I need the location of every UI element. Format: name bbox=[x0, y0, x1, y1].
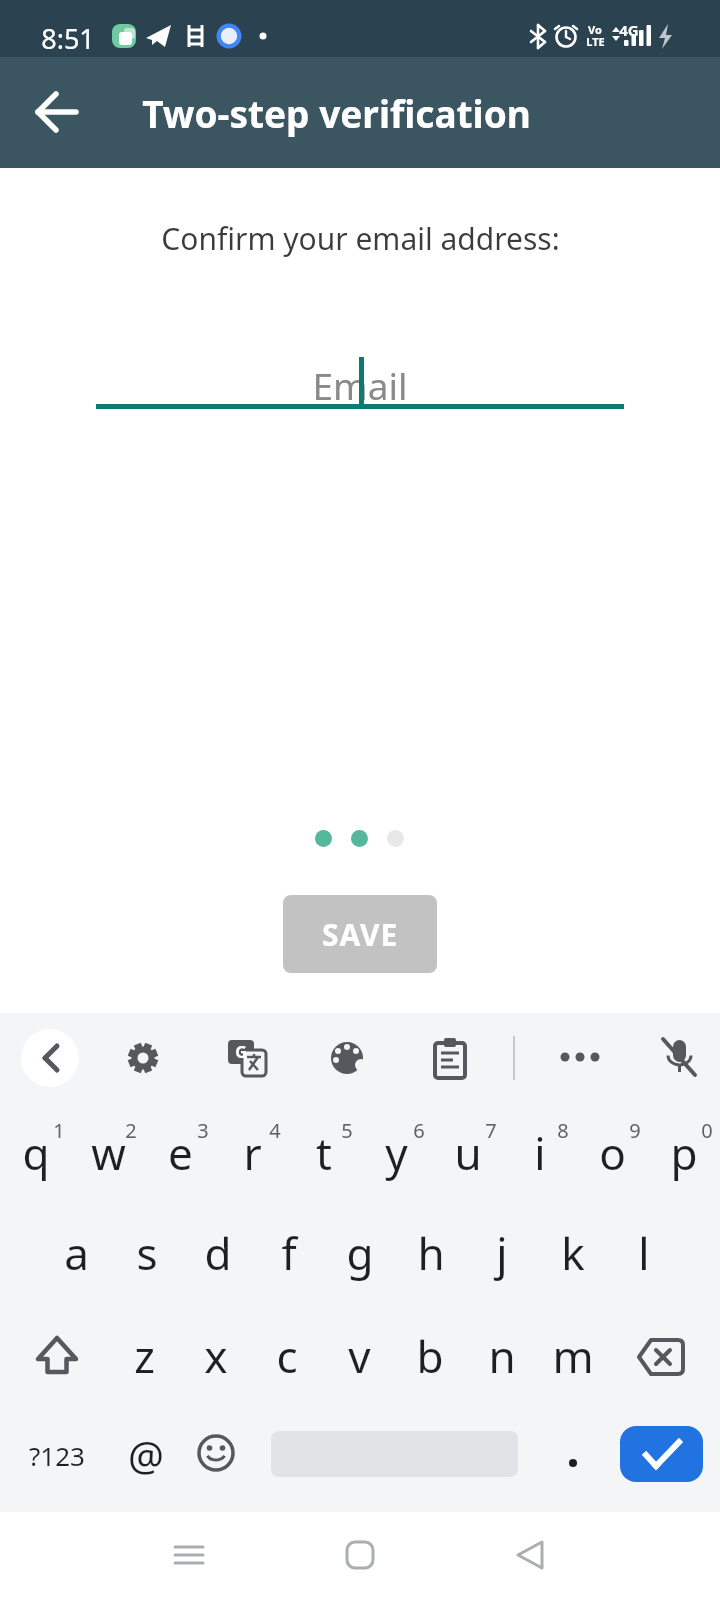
staticText: g bbox=[346, 1223, 374, 1283]
button[interactable]: ?123 bbox=[20, 1432, 94, 1478]
staticText: h bbox=[417, 1223, 445, 1283]
button[interactable] bbox=[22, 80, 88, 144]
staticText: Vo bbox=[588, 22, 602, 35]
staticText: d bbox=[204, 1223, 232, 1283]
button[interactable] bbox=[186, 1428, 246, 1482]
staticText: Confirm your email address: bbox=[161, 218, 560, 259]
staticText: c bbox=[276, 1326, 298, 1386]
button[interactable]: r bbox=[216, 1107, 288, 1199]
staticText: 7 bbox=[485, 1117, 497, 1141]
button[interactable]: j bbox=[467, 1207, 537, 1299]
button[interactable]: c bbox=[252, 1310, 322, 1402]
staticText: 5 bbox=[341, 1117, 353, 1141]
staticText: y bbox=[385, 1123, 408, 1183]
button[interactable] bbox=[324, 1034, 372, 1082]
staticText: Two-step verification bbox=[142, 88, 531, 138]
staticText: v bbox=[348, 1326, 371, 1386]
staticText: 9 bbox=[629, 1117, 641, 1141]
staticText: m bbox=[552, 1326, 594, 1386]
button[interactable] bbox=[21, 1029, 79, 1087]
staticText: 4 bbox=[269, 1117, 281, 1141]
button[interactable]: q bbox=[0, 1107, 72, 1199]
button[interactable]: d bbox=[183, 1207, 253, 1299]
button[interactable] bbox=[426, 1034, 474, 1082]
button[interactable]: o bbox=[576, 1107, 648, 1199]
button[interactable]: f bbox=[254, 1207, 324, 1299]
staticText: z bbox=[134, 1326, 155, 1386]
staticText: 6 bbox=[413, 1117, 425, 1141]
button[interactable]: z bbox=[109, 1310, 179, 1402]
button[interactable]: m bbox=[538, 1310, 608, 1402]
staticText: ?123 bbox=[29, 1438, 85, 1473]
staticText: G bbox=[235, 1041, 247, 1063]
button[interactable]: g bbox=[325, 1207, 395, 1299]
button[interactable] bbox=[22, 1318, 92, 1396]
button[interactable] bbox=[620, 1426, 703, 1482]
button[interactable]: n bbox=[467, 1310, 537, 1402]
staticText: SAVE bbox=[322, 914, 399, 955]
staticText: e bbox=[168, 1123, 193, 1183]
button[interactable] bbox=[161, 1527, 217, 1583]
staticText: f bbox=[281, 1223, 297, 1283]
button[interactable]: u bbox=[432, 1107, 504, 1199]
staticText: 8 bbox=[557, 1117, 569, 1141]
button[interactable]: p bbox=[648, 1107, 720, 1199]
button[interactable]: h bbox=[396, 1207, 466, 1299]
button[interactable] bbox=[626, 1318, 696, 1396]
staticText: b bbox=[416, 1326, 444, 1386]
staticText: Email bbox=[312, 360, 408, 410]
staticText: o bbox=[599, 1123, 626, 1183]
staticText: t bbox=[316, 1123, 332, 1183]
staticText: w bbox=[91, 1123, 126, 1183]
staticText: l bbox=[638, 1223, 650, 1283]
staticText: 2 bbox=[125, 1117, 137, 1141]
staticText: i bbox=[534, 1123, 546, 1183]
button[interactable] bbox=[543, 1428, 603, 1482]
staticText: 4G bbox=[619, 20, 639, 40]
button[interactable] bbox=[222, 1034, 270, 1082]
button[interactable]: a bbox=[41, 1207, 111, 1299]
button[interactable] bbox=[119, 1034, 167, 1082]
staticText: u bbox=[454, 1123, 482, 1183]
button[interactable] bbox=[655, 1034, 703, 1082]
staticText: @ bbox=[128, 1428, 164, 1482]
staticText: r bbox=[243, 1123, 262, 1183]
button[interactable]: y bbox=[360, 1107, 432, 1199]
button[interactable]: s bbox=[112, 1207, 182, 1299]
staticText: q bbox=[22, 1123, 50, 1183]
button[interactable]: b bbox=[395, 1310, 465, 1402]
staticText: LTE bbox=[586, 34, 605, 47]
staticText: s bbox=[136, 1223, 158, 1283]
staticText: n bbox=[488, 1326, 516, 1386]
staticText: 0 bbox=[701, 1117, 713, 1141]
button[interactable]: x bbox=[181, 1310, 251, 1402]
button[interactable] bbox=[556, 1034, 604, 1082]
staticText: j bbox=[496, 1223, 508, 1283]
button[interactable] bbox=[502, 1527, 558, 1583]
button[interactable]: i bbox=[504, 1107, 576, 1199]
button[interactable]: l bbox=[609, 1207, 679, 1299]
button[interactable]: v bbox=[324, 1310, 394, 1402]
button[interactable]: @ bbox=[109, 1428, 183, 1482]
staticText: x bbox=[204, 1326, 228, 1386]
button[interactable] bbox=[332, 1527, 388, 1583]
staticText: 3 bbox=[197, 1117, 209, 1141]
staticText: k bbox=[561, 1223, 585, 1283]
staticText: 8:51 bbox=[41, 20, 95, 52]
button[interactable]: w bbox=[72, 1107, 144, 1199]
button[interactable]: e bbox=[144, 1107, 216, 1199]
button[interactable]: SAVE bbox=[283, 895, 437, 973]
staticText: a bbox=[64, 1223, 89, 1283]
staticText: 1 bbox=[53, 1117, 65, 1141]
staticText: p bbox=[670, 1123, 698, 1183]
button[interactable]: k bbox=[538, 1207, 608, 1299]
button[interactable]: t bbox=[288, 1107, 360, 1199]
